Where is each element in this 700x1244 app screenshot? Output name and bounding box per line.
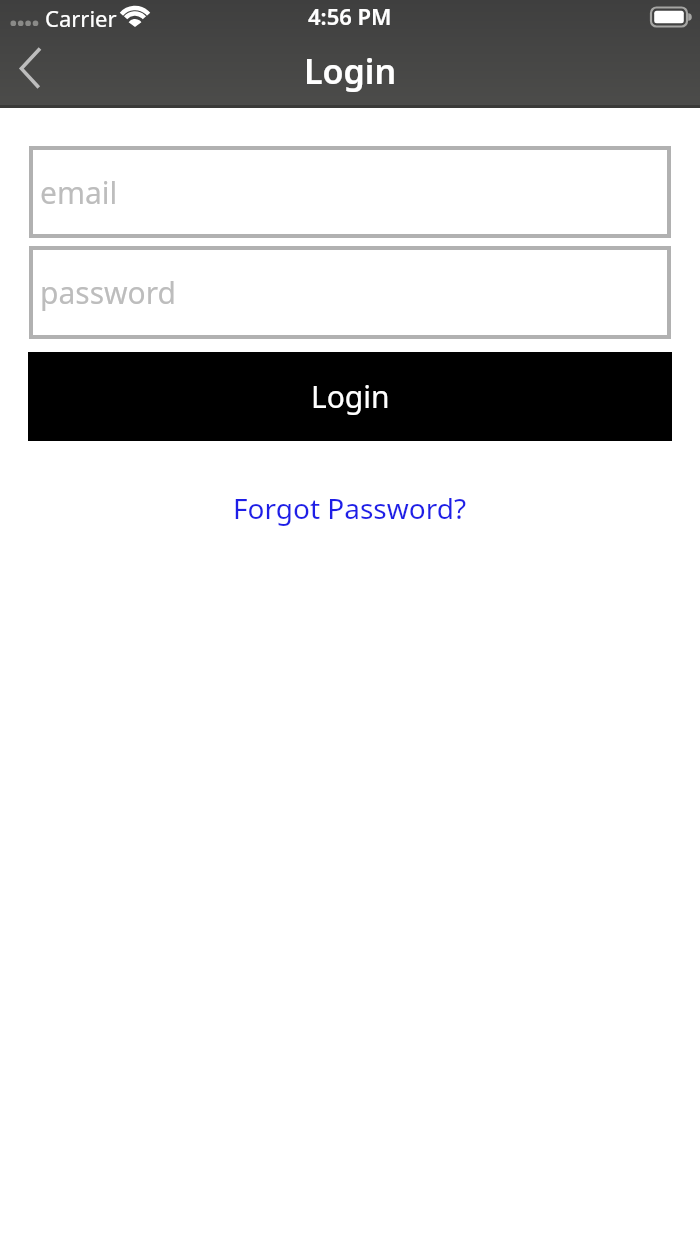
button[interactable]: Forgot Password? <box>233 489 467 527</box>
staticText: Carrier <box>45 3 117 33</box>
button[interactable]: Login <box>28 352 672 441</box>
button[interactable]: password <box>29 246 671 339</box>
button[interactable]: email <box>29 146 671 238</box>
staticText: Login <box>304 48 397 94</box>
staticText: password <box>40 272 176 313</box>
staticText: Login <box>311 376 390 417</box>
staticText: email <box>40 172 118 213</box>
staticText: 4:56 PM <box>308 1 392 31</box>
staticText: Forgot Password? <box>233 489 467 527</box>
button[interactable] <box>10 40 54 96</box>
